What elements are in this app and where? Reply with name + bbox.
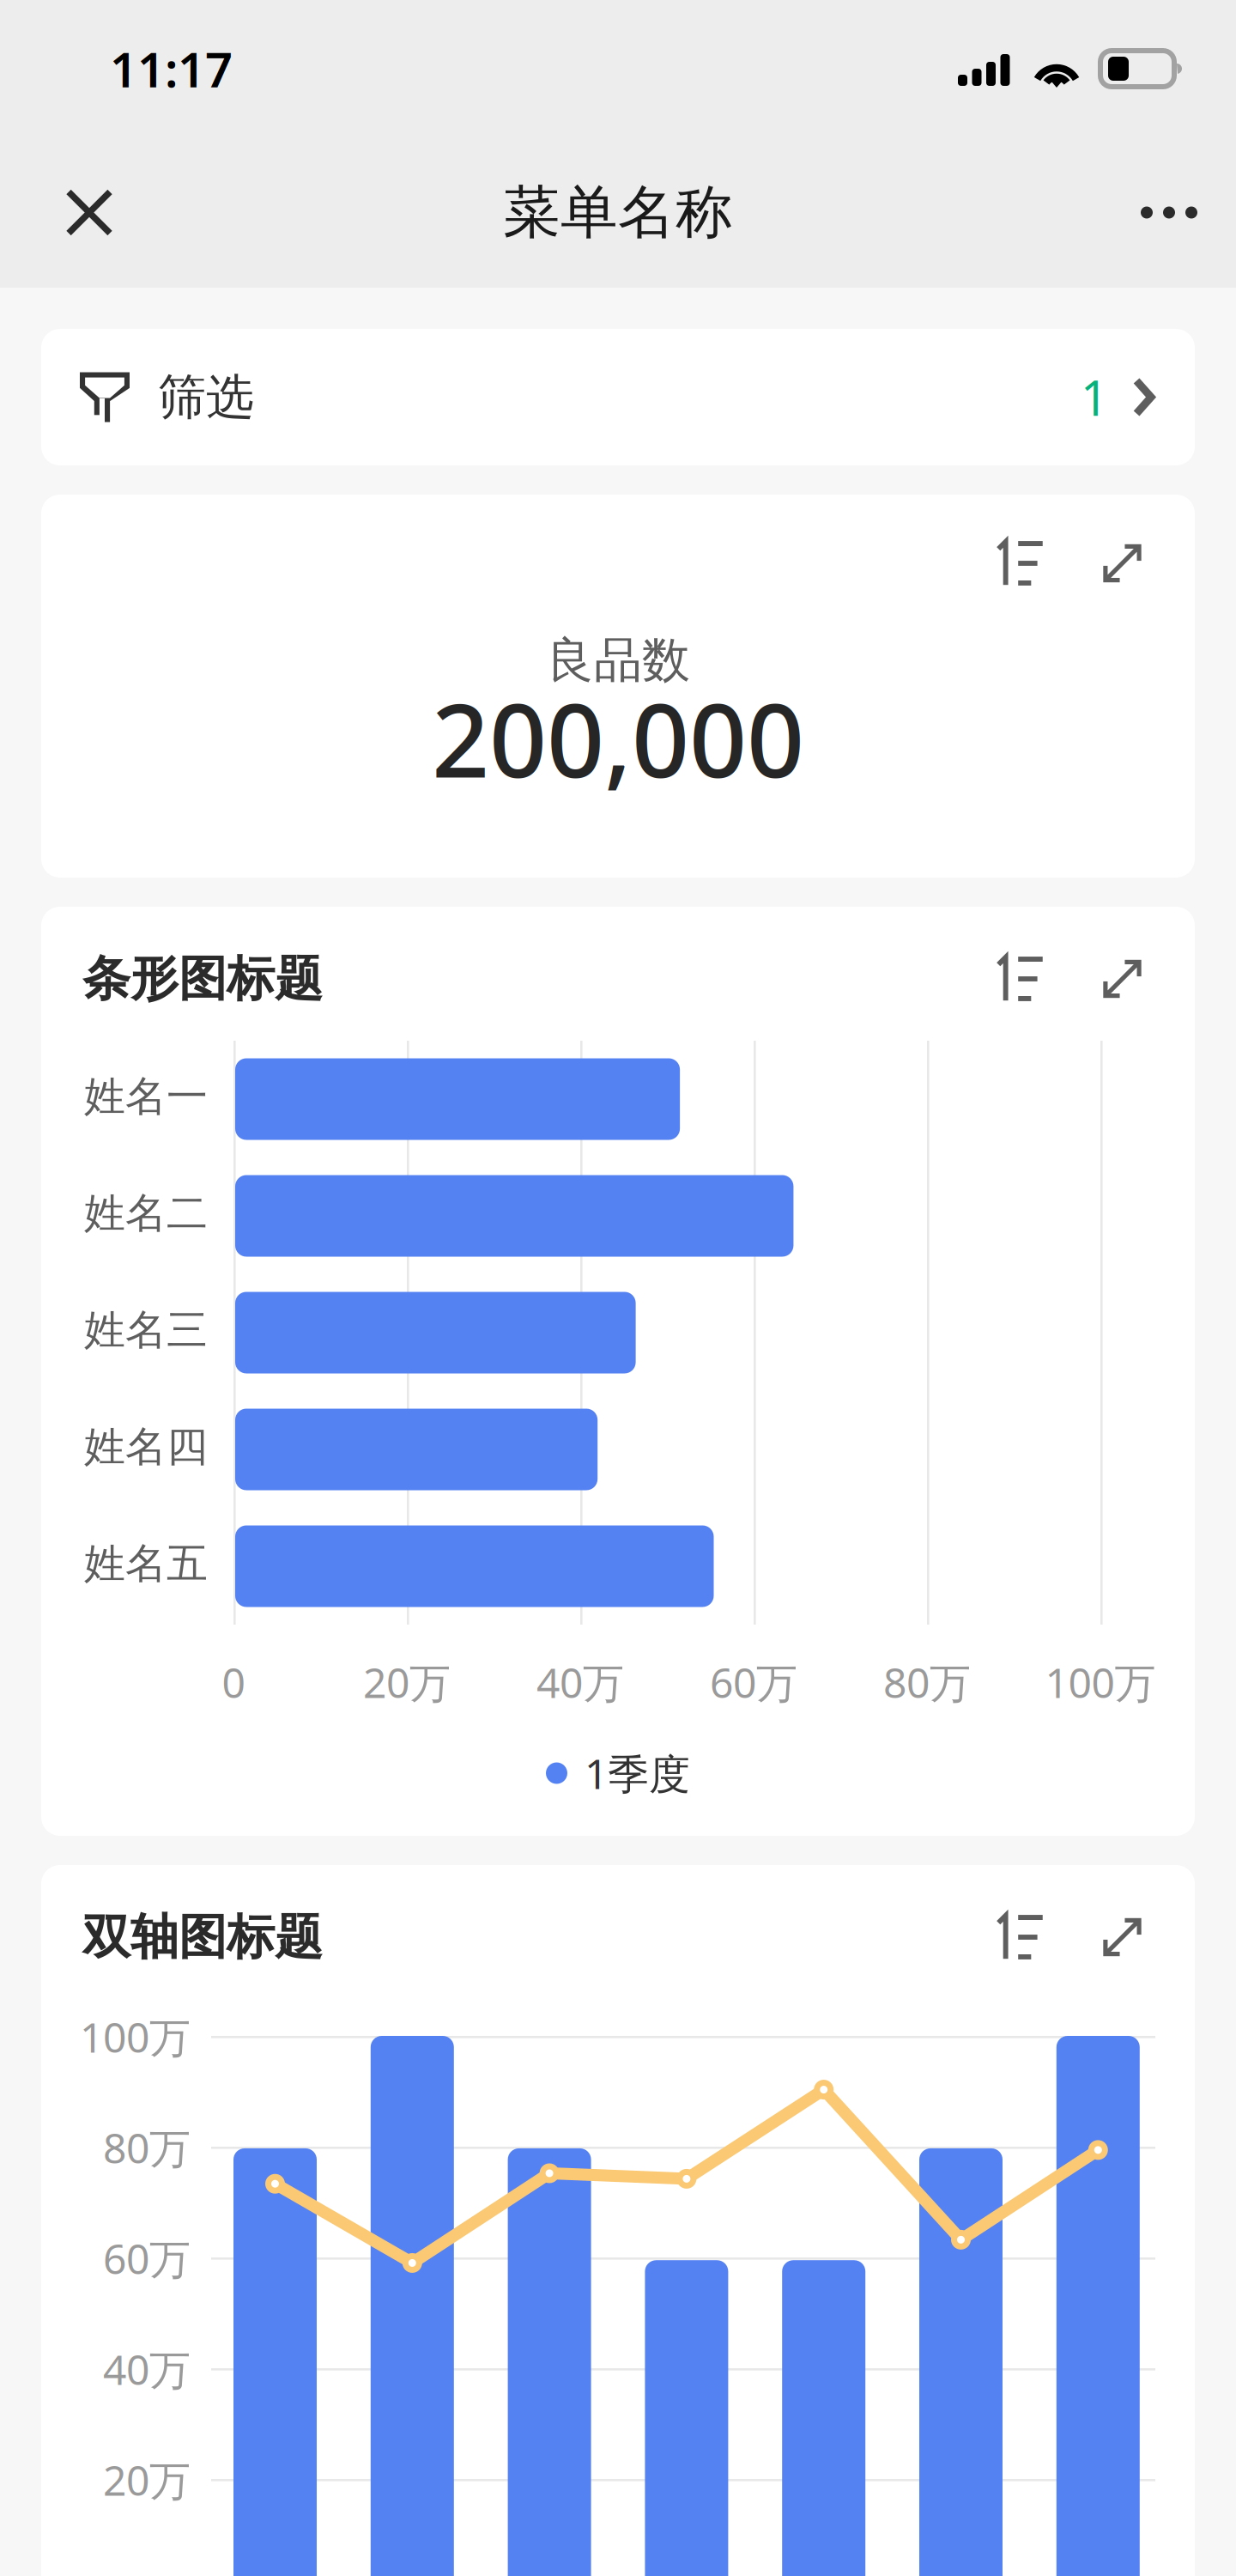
- staticText: 双轴图标题: [82, 1908, 323, 1967]
- staticText: 100万: [80, 2009, 191, 2064]
- staticText: 1季度: [585, 1746, 690, 1800]
- button[interactable]: Expand: [1087, 532, 1143, 594]
- staticText: 80万: [103, 2120, 191, 2175]
- staticText: 姓名一: [84, 1071, 208, 1122]
- staticText: 40万: [103, 2342, 191, 2396]
- button[interactable]: Sort: [997, 1906, 1087, 1968]
- staticText: 条形图标题: [82, 949, 323, 1008]
- button[interactable]: Sort: [997, 532, 1087, 594]
- staticText: 11:17: [110, 37, 233, 101]
- staticText: 1: [1081, 365, 1108, 429]
- button[interactable]: More: [1118, 168, 1221, 257]
- staticText: 0: [222, 1655, 245, 1709]
- button[interactable]: Expand: [1087, 1906, 1143, 1968]
- staticText: 20万: [103, 2452, 191, 2507]
- staticText: 筛选: [158, 368, 254, 427]
- staticText: 姓名五: [84, 1538, 208, 1589]
- staticText: 姓名四: [84, 1422, 208, 1472]
- staticText: 100万: [1045, 1655, 1156, 1709]
- staticText: 80万: [883, 1655, 971, 1709]
- button[interactable]: Expand: [1087, 948, 1143, 1010]
- staticText: 60万: [103, 2231, 191, 2286]
- staticText: 20万: [363, 1655, 451, 1709]
- staticText: 40万: [536, 1655, 624, 1709]
- button[interactable]: Sort: [997, 948, 1087, 1010]
- button[interactable]: 筛选: [41, 329, 1195, 465]
- staticText: 菜单名称: [503, 177, 733, 248]
- staticText: 姓名三: [84, 1305, 208, 1355]
- staticText: 60万: [710, 1655, 797, 1709]
- staticText: 良品数: [546, 631, 690, 690]
- button[interactable]: Close: [45, 168, 134, 257]
- staticText: 姓名二: [84, 1188, 208, 1239]
- staticText: 200,000: [432, 672, 804, 805]
